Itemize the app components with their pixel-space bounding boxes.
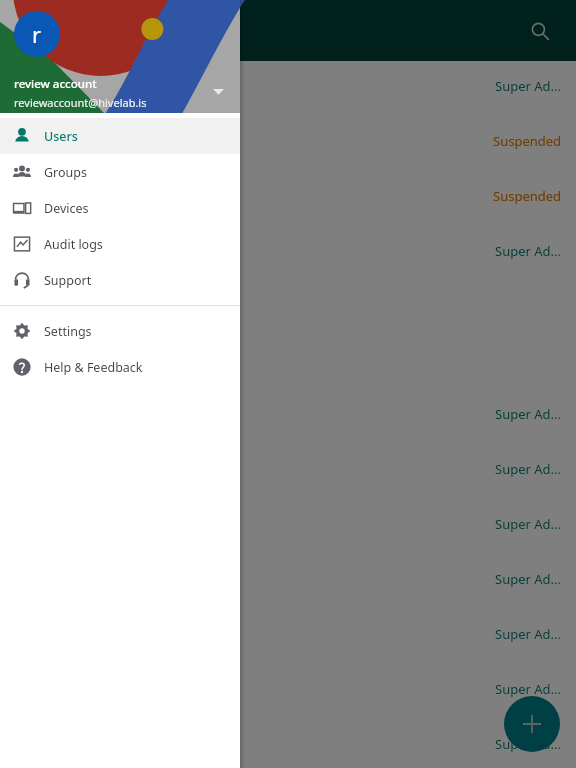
button[interactable]: Super Ad... [0,236,576,266]
staticText: Devices [44,200,89,217]
button[interactable]: Add user [504,696,560,752]
staticText: Groups [44,164,87,181]
button[interactable]: Super Ad... [0,71,576,101]
staticText: Support [44,272,92,289]
button[interactable]: Suspended [0,181,576,211]
staticText: Settings [44,323,92,340]
button[interactable]: Suspended [0,126,576,156]
staticText: review account [14,76,97,92]
staticText: Users [44,128,78,145]
button[interactable]: Users [0,118,240,154]
staticText: Super Ad... [495,405,562,423]
button[interactable]: Audit logs [0,226,240,262]
button[interactable]: Super Ad... [0,674,576,704]
button[interactable]: Super Ad... [0,454,576,484]
staticText: Super Ad... [495,735,562,753]
button[interactable]: Help & Feedback [0,349,240,385]
staticText: Suspended [493,187,562,205]
staticText: Super Ad... [495,515,562,533]
button[interactable]: r [14,11,60,57]
button[interactable]: Super Ad... [0,509,576,539]
staticText: Super Ad... [495,242,562,260]
staticText: Help & Feedback [44,359,143,376]
button[interactable]: Support [0,262,240,298]
button[interactable]: Super Ad... [0,619,576,649]
button[interactable]: Search [518,9,562,53]
staticText: Super Ad... [495,460,562,478]
staticText: Super Ad... [495,680,562,698]
button[interactable]: Devices [0,190,240,226]
staticText: Super Ad... [495,625,562,643]
staticText: Super Ad... [495,570,562,588]
button[interactable]: Groups [0,154,240,190]
button[interactable]: Super Ad... [0,729,576,759]
staticText: r [32,19,42,49]
button[interactable]: Super Ad... [0,399,576,429]
staticText: Suspended [493,132,562,150]
staticText: Audit logs [44,236,103,253]
button[interactable]: Settings [0,313,240,349]
staticText: reviewaccount@hivelab.is [14,95,147,110]
button[interactable]: Super Ad... [0,564,576,594]
button[interactable]: Switch account [204,77,232,105]
staticText: Super Ad... [495,77,562,95]
